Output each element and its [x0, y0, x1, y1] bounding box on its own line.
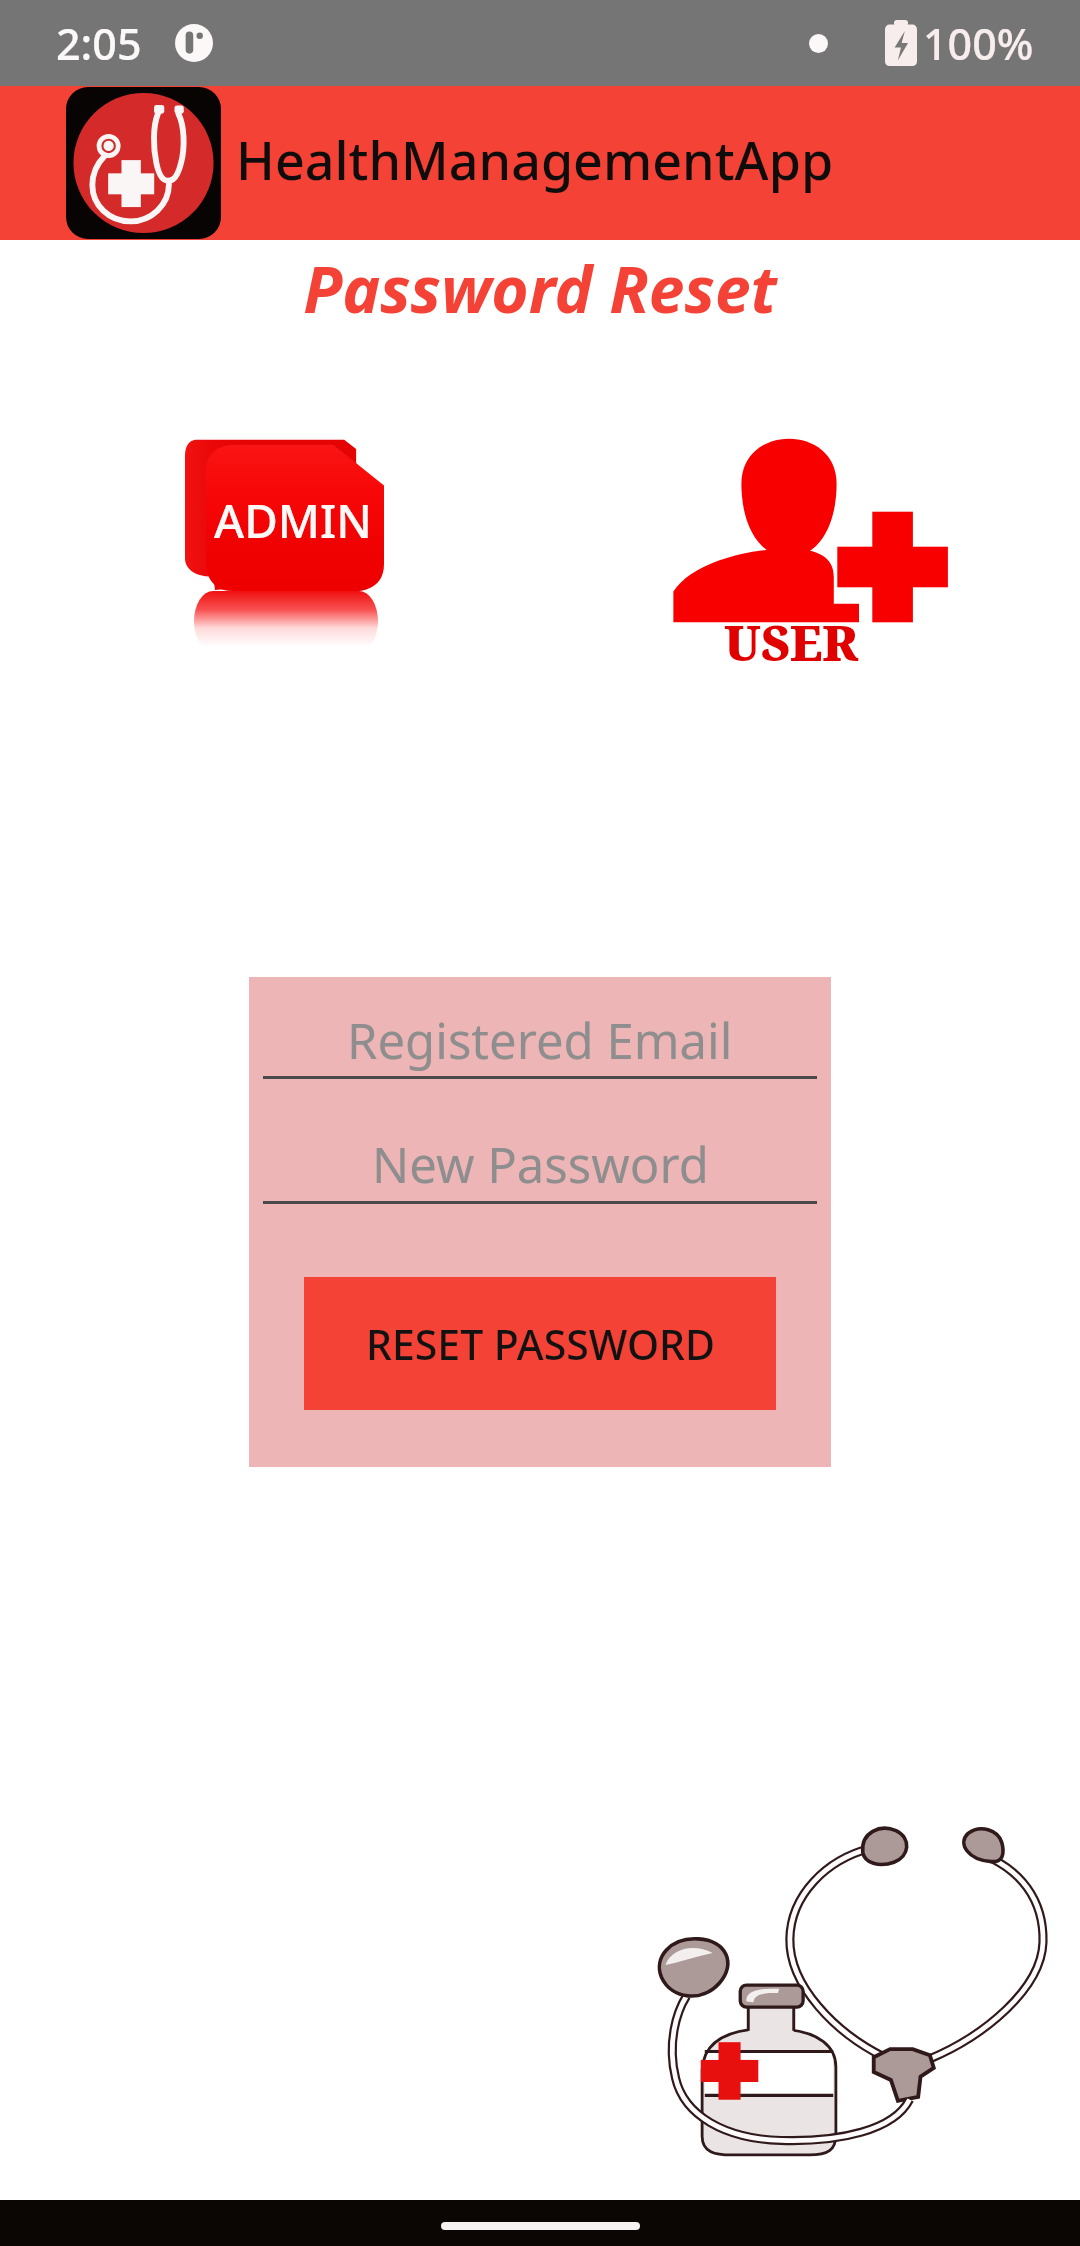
- staticText: ADMIN: [214, 489, 372, 552]
- staticText: New Password: [372, 1131, 709, 1198]
- staticText: USER: [724, 610, 859, 675]
- staticText: RESET PASSWORD: [366, 1316, 715, 1372]
- staticText: Registered Email: [347, 1007, 733, 1074]
- staticText: 2:05: [56, 14, 142, 73]
- button[interactable]: User: [670, 420, 950, 665]
- button[interactable]: New Password: [263, 1124, 817, 1202]
- staticText: HealthManagementApp: [236, 124, 834, 195]
- button[interactable]: Registered Email: [263, 999, 817, 1077]
- button[interactable]: Admin: [185, 437, 384, 657]
- staticText: 100%: [923, 14, 1034, 73]
- button[interactable]: App logo: [66, 87, 221, 239]
- staticText: Password Reset: [0, 245, 1080, 332]
- button[interactable]: RESET PASSWORD: [304, 1277, 776, 1410]
